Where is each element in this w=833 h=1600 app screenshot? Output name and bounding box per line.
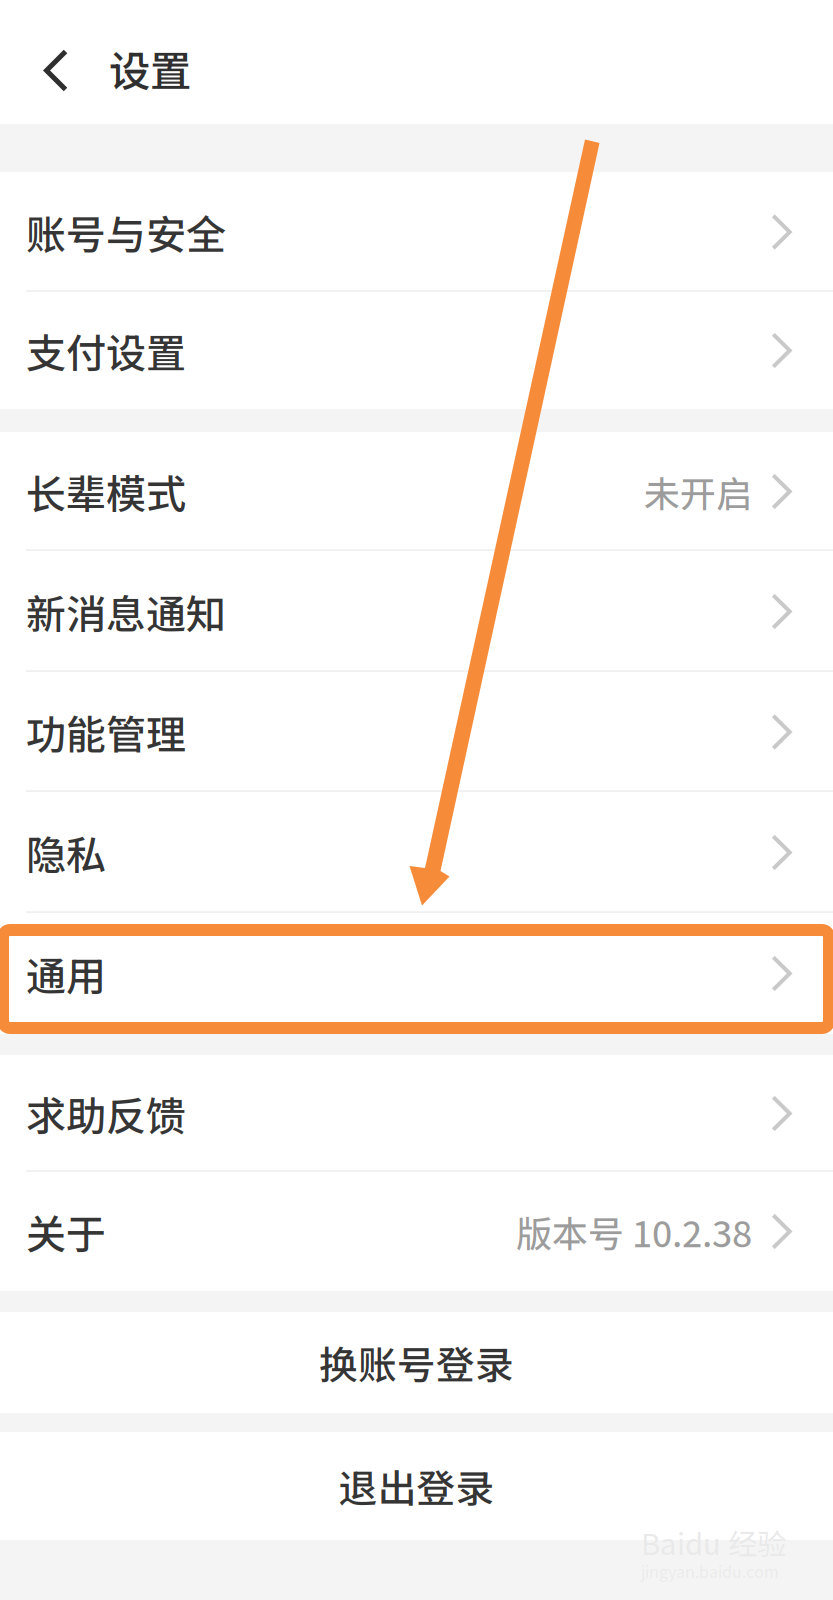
staticText: 版本号 10.2.38: [516, 1205, 752, 1257]
button[interactable]: 长辈模式: [0, 432, 833, 551]
button[interactable]: 新消息通知: [0, 551, 833, 672]
staticText: 新消息通知: [26, 582, 226, 640]
button[interactable]: Back: [0, 0, 109, 124]
button[interactable]: 功能管理: [0, 672, 833, 792]
staticText: 支付设置: [26, 321, 186, 379]
button[interactable]: 关于: [0, 1172, 833, 1291]
button[interactable]: 隐私: [0, 792, 833, 913]
staticText: 求助反馈: [26, 1084, 186, 1142]
button[interactable]: 支付设置: [0, 292, 833, 409]
staticText: 隐私: [26, 823, 106, 881]
staticText: Baidu 经验: [641, 1521, 786, 1563]
staticText: 换账号登录: [319, 1334, 514, 1390]
button[interactable]: 退出登录: [0, 1432, 833, 1540]
staticText: 未开启: [644, 465, 752, 517]
button[interactable]: 通用: [0, 913, 833, 1034]
staticText: 通用: [26, 944, 106, 1002]
staticText: 关于: [26, 1202, 106, 1260]
staticText: 功能管理: [26, 703, 186, 761]
button[interactable]: 换账号登录: [0, 1312, 833, 1413]
staticText: 账号与安全: [26, 203, 226, 261]
button[interactable]: 账号与安全: [0, 172, 833, 292]
staticText: jingyan.baidu.com: [641, 1559, 779, 1583]
button[interactable]: 求助反馈: [0, 1055, 833, 1172]
staticText: 长辈模式: [26, 462, 186, 520]
staticText: 设置: [109, 39, 191, 98]
staticText: 退出登录: [338, 1458, 494, 1514]
